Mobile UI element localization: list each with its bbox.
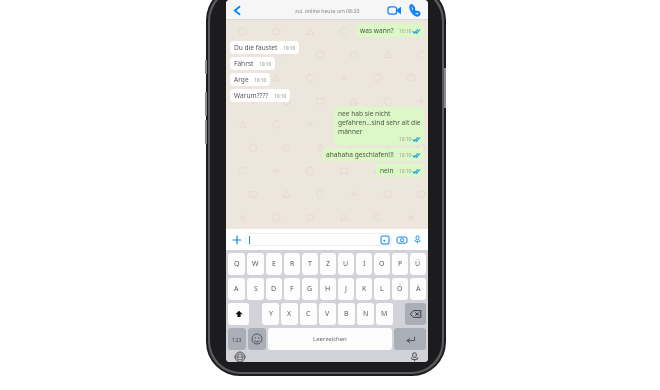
button[interactable]: O (374, 253, 390, 275)
button[interactable]: F (284, 278, 300, 300)
button[interactable]: X (281, 303, 298, 325)
staticText: F (290, 284, 294, 294)
staticText: nee hab sie nicht (338, 109, 391, 118)
staticText: K (362, 284, 367, 294)
button[interactable]: Fährst (230, 57, 275, 70)
button[interactable]: Voice message (411, 233, 424, 246)
button[interactable]: Stickers (245, 233, 392, 246)
button[interactable]: Du die faustet (230, 41, 299, 54)
staticText: Leerzeichen (313, 335, 347, 343)
staticText: X (287, 309, 292, 319)
button[interactable]: ahahaha geschlafen!!! (322, 148, 424, 161)
staticText: C (306, 309, 311, 319)
button[interactable]: N (357, 303, 374, 325)
button[interactable]: K (356, 278, 372, 300)
staticText: Z (326, 259, 331, 269)
button[interactable]: J (338, 278, 354, 300)
staticText: U (343, 259, 349, 269)
button[interactable]: S (247, 278, 264, 300)
button[interactable]: R (284, 253, 300, 275)
button[interactable]: E (266, 253, 282, 275)
staticText: H (325, 284, 331, 294)
staticText: 10:10 (399, 28, 412, 35)
staticText: ahahaha geschlafen!!! (326, 150, 394, 159)
button[interactable]: Change keyboard (232, 352, 248, 362)
button[interactable]: Attach (230, 233, 243, 246)
staticText: I (363, 259, 366, 269)
staticText: männer (338, 127, 363, 136)
staticText: N (363, 309, 369, 319)
staticText: 10:10 (274, 93, 287, 100)
staticText: P (398, 259, 403, 269)
button[interactable]: D (266, 278, 282, 300)
button[interactable]: M (376, 303, 393, 325)
button[interactable]: Ö (392, 278, 408, 300)
button[interactable]: 123 (228, 328, 246, 350)
staticText: E (272, 259, 276, 269)
button[interactable]: Arge (230, 73, 270, 86)
button[interactable]: Ü (410, 253, 426, 275)
button[interactable]: Voice call (406, 1, 424, 19)
button[interactable]: W (247, 253, 264, 275)
staticText: O (379, 259, 385, 269)
staticText: gefahren...sind sehr alt die (338, 118, 421, 127)
staticText: 10:10 (399, 152, 412, 159)
staticText: A (234, 284, 239, 294)
staticText: D (271, 284, 277, 294)
staticText: 10:10 (283, 45, 296, 52)
button[interactable]: Back (229, 2, 245, 18)
button[interactable]: Z (320, 253, 336, 275)
button[interactable]: Stickers (379, 234, 390, 245)
staticText: G (307, 284, 313, 294)
button[interactable]: Emoji (248, 328, 266, 350)
button[interactable]: Dictation (406, 352, 422, 362)
button[interactable]: V (319, 303, 336, 325)
button[interactable]: A (228, 278, 245, 300)
button[interactable]: Y (262, 303, 279, 325)
staticText: Ü (415, 259, 421, 269)
button[interactable]: H (320, 278, 336, 300)
staticText: Ä (416, 284, 421, 294)
staticText: 123 (232, 336, 242, 343)
staticText: Y (269, 309, 273, 319)
staticText: Du die faustet (234, 43, 278, 52)
staticText: 10:10 (399, 168, 412, 175)
staticText: Warum???? (234, 91, 269, 100)
staticText: Q (234, 259, 240, 269)
button[interactable]: G (302, 278, 318, 300)
staticText: L (380, 284, 384, 294)
button[interactable]: U (338, 253, 354, 275)
staticText: T (308, 259, 312, 269)
staticText: B (344, 309, 349, 319)
staticText: Ö (397, 284, 403, 294)
staticText: V (325, 309, 330, 319)
staticText: nein (380, 166, 394, 175)
staticText: W (252, 259, 259, 269)
staticText: S (254, 284, 258, 294)
button[interactable]: Warum???? (230, 89, 290, 102)
button[interactable]: Video call (385, 1, 403, 19)
button[interactable]: I (356, 253, 372, 275)
button[interactable]: was wann? (356, 24, 424, 37)
button[interactable]: P (392, 253, 408, 275)
button[interactable]: Q (228, 253, 245, 275)
button[interactable]: nein (376, 164, 424, 177)
staticText: M (381, 309, 388, 319)
button[interactable]: Shift (228, 303, 249, 325)
button[interactable]: Return (394, 328, 426, 350)
button[interactable]: T (302, 253, 318, 275)
button[interactable]: Camera (395, 233, 408, 246)
staticText: Fährst (234, 59, 254, 68)
staticText: zul. online heute um 08:20 (295, 7, 360, 14)
staticText: J (345, 284, 347, 294)
button[interactable]: Backspace (405, 303, 426, 325)
staticText: 10:10 (259, 61, 272, 68)
button[interactable]: B (338, 303, 355, 325)
button[interactable]: nee hab sie nicht (334, 107, 424, 145)
button[interactable]: L (374, 278, 390, 300)
button[interactable]: C (300, 303, 317, 325)
button[interactable]: Leerzeichen (268, 328, 392, 350)
button[interactable]: Ä (410, 278, 426, 300)
staticText: R (290, 259, 295, 269)
staticText: 10:10 (254, 77, 267, 84)
